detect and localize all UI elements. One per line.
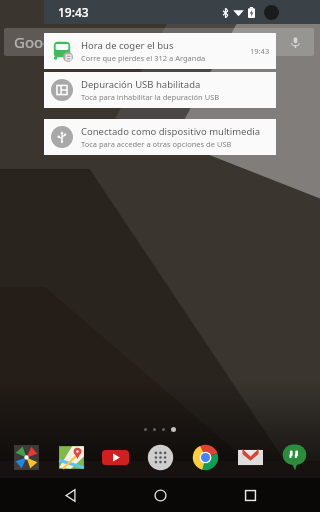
- button[interactable]: Depuración USB habilitada: [44, 72, 276, 108]
- staticText: 19:43: [250, 46, 270, 56]
- button[interactable]: Chrome: [186, 438, 224, 476]
- staticText: Corre que pierdes el 312 a Arganda: [81, 53, 206, 63]
- staticText: Google: [14, 32, 65, 52]
- staticText: Conectado como dispositivo multimedia: [81, 125, 261, 138]
- button[interactable]: Hora de coger el bus: [44, 33, 276, 69]
- button[interactable]: Maps: [52, 438, 90, 476]
- button[interactable]: Home: [140, 478, 180, 512]
- button[interactable]: Back: [50, 478, 90, 512]
- button[interactable]: Google: [4, 28, 314, 56]
- button[interactable]: User account: [264, 5, 279, 20]
- button[interactable]: Recent apps: [230, 478, 270, 512]
- staticText: Toca para acceder a otras opciones de US…: [81, 139, 232, 149]
- button[interactable]: All apps: [141, 438, 179, 476]
- button[interactable]: Photos: [7, 438, 45, 476]
- staticText: 19:43: [58, 4, 89, 20]
- button[interactable]: Conectado como dispositivo multimedia: [44, 119, 276, 155]
- staticText: Hora de coger el bus: [81, 39, 174, 52]
- button[interactable]: Hangouts: [275, 438, 313, 476]
- button[interactable]: YouTube: [96, 438, 134, 476]
- button[interactable]: Voice search: [289, 36, 302, 49]
- staticText: Depuración USB habilitada: [81, 78, 201, 91]
- button[interactable]: Gmail: [231, 438, 269, 476]
- staticText: Toca para inhabilitar la depuración USB: [81, 92, 220, 102]
